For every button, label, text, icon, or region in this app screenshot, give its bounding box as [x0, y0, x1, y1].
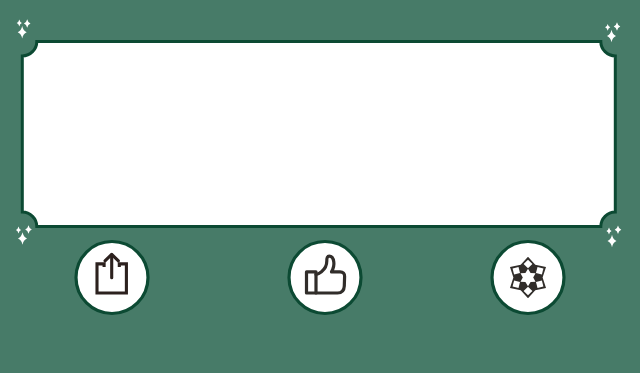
button[interactable]	[490, 240, 565, 315]
button[interactable]	[74, 240, 149, 315]
button[interactable]	[287, 240, 362, 315]
